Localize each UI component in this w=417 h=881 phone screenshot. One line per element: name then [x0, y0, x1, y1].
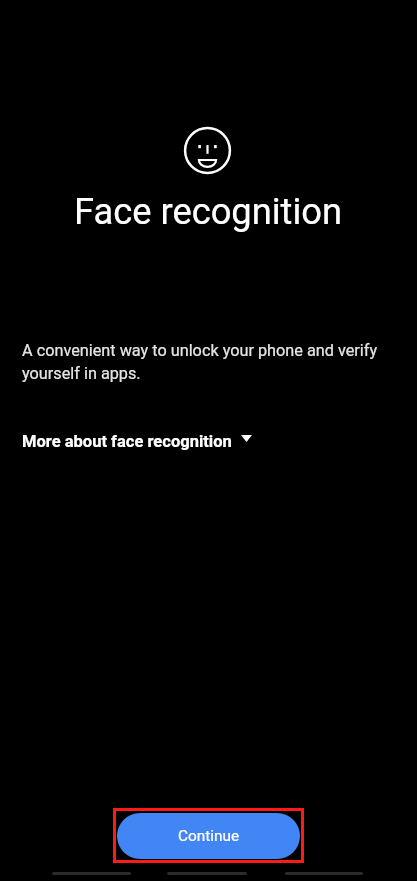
- other: Face recognition: [0, 0, 417, 881]
- staticText: More about face recognition: [22, 432, 232, 451]
- staticText: A convenient way to unlock your phone an…: [22, 341, 402, 383]
- button[interactable]: Back: [52, 866, 131, 881]
- button[interactable]: Continue: [117, 813, 300, 859]
- staticText: Continue: [178, 827, 240, 845]
- button[interactable]: More about face recognition: [14, 424, 260, 458]
- staticText: Face recognition: [74, 190, 343, 233]
- button[interactable]: Recent apps: [285, 866, 363, 881]
- button[interactable]: Home: [167, 866, 247, 881]
